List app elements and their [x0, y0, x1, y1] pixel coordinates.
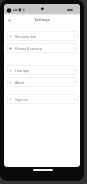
button[interactable]: Privacy & security [7, 43, 78, 53]
staticText: Lock app [15, 68, 29, 72]
button[interactable]: Lock app [7, 65, 78, 75]
staticText: Settings [34, 17, 50, 22]
button[interactable]: About [7, 77, 78, 87]
staticText: Sign out [15, 97, 28, 101]
button[interactable]: Back [4, 15, 14, 25]
staticText: Privacy & security [15, 46, 43, 50]
staticText: About [15, 80, 25, 84]
staticText: Recovery info [15, 34, 36, 38]
button[interactable]: Recovery info [7, 31, 78, 41]
button[interactable]: Sign out [7, 94, 78, 104]
